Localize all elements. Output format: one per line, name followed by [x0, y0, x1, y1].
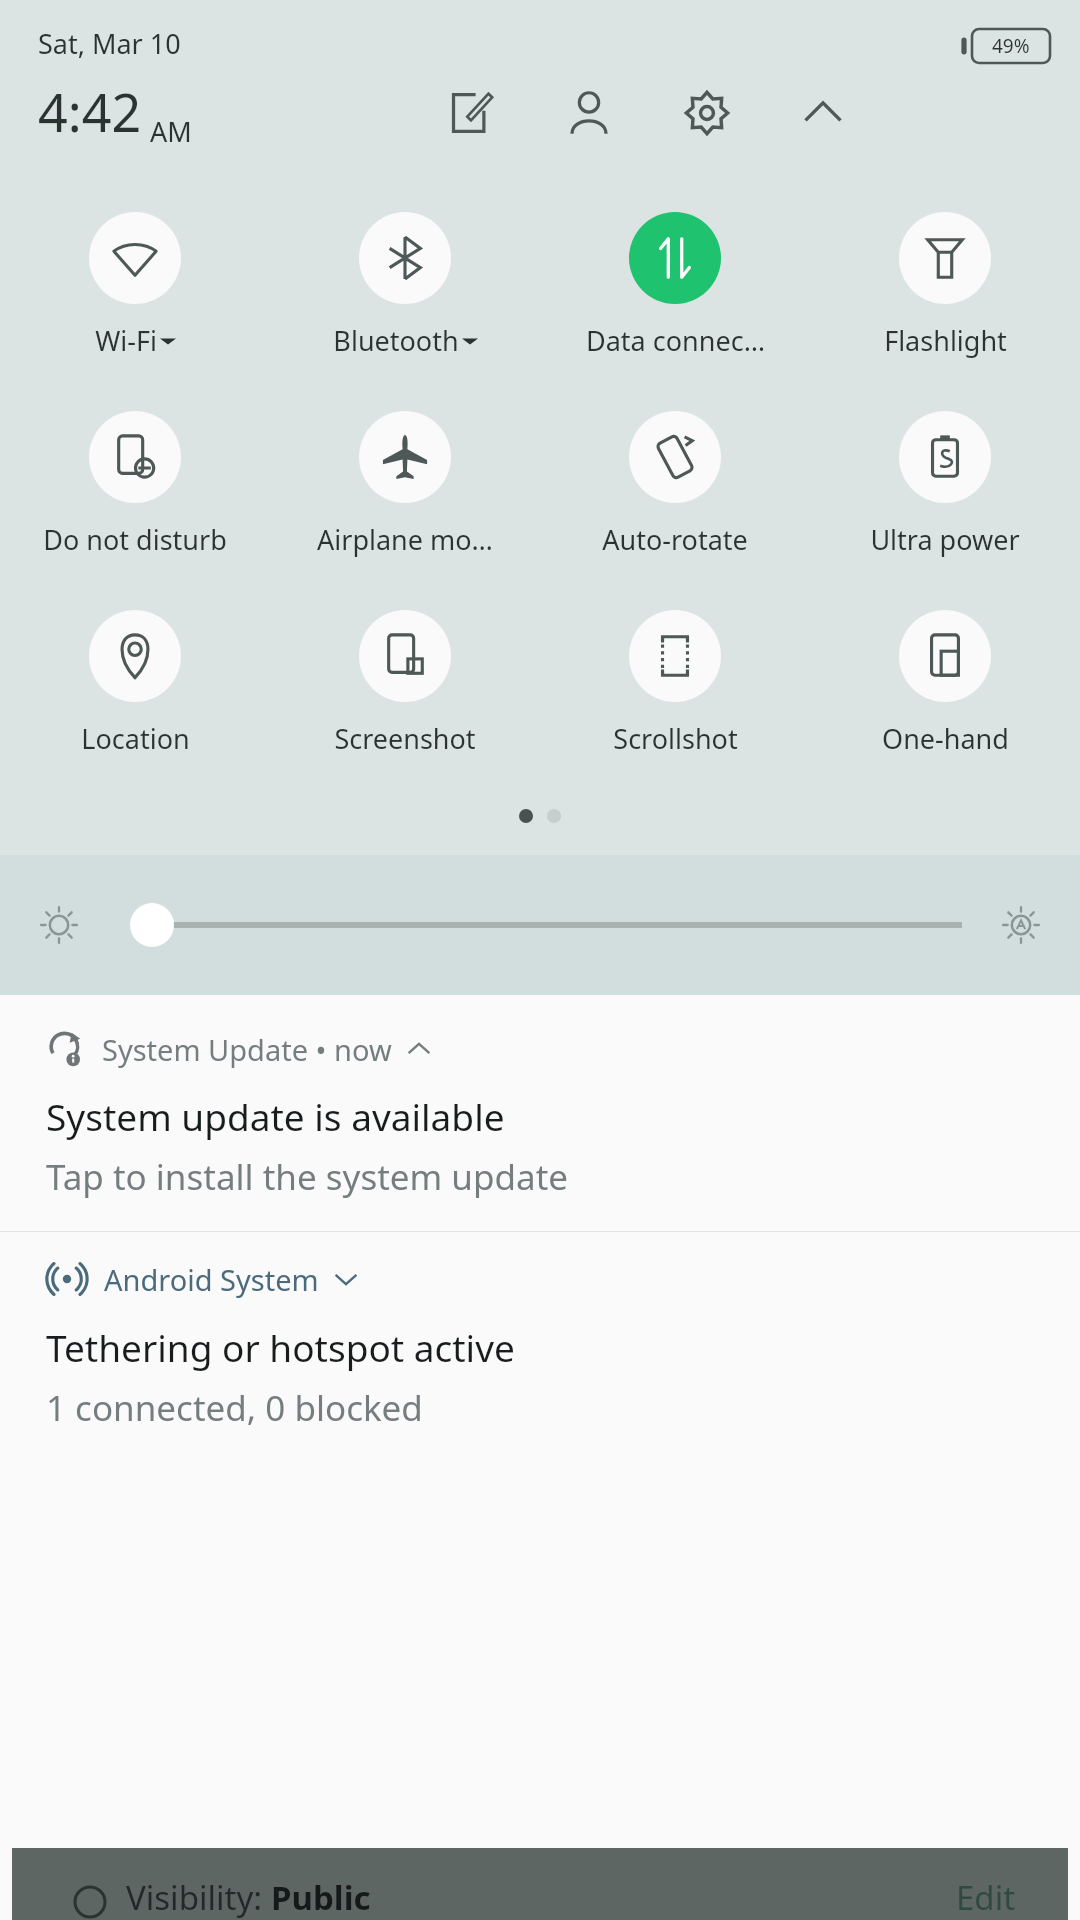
staticText: One-hand — [882, 720, 1009, 757]
staticText: Tap to install the system update — [46, 1153, 569, 1201]
staticText: Airplane mo… — [317, 521, 493, 558]
staticText: Wi-Fi — [95, 322, 157, 359]
staticText: Data connec… — [586, 322, 765, 359]
button[interactable]: One-hand — [810, 610, 1080, 757]
button[interactable]: Wi-Fi — [0, 212, 270, 359]
staticText: Sat, Mar 10 — [38, 25, 181, 62]
staticText: Flashlight — [884, 322, 1007, 359]
staticText: Visibility: — [126, 1875, 271, 1920]
button[interactable]: Edit — [442, 84, 500, 142]
staticText: AM — [150, 113, 192, 150]
staticText: Bluetooth — [333, 322, 459, 359]
staticText: Screenshot — [334, 720, 476, 757]
staticText: System Update • now — [102, 1030, 392, 1069]
button[interactable]: User — [560, 84, 618, 142]
staticText: Do not disturb — [43, 521, 227, 558]
button[interactable]: Do not disturb — [0, 411, 270, 558]
staticText: Public — [271, 1875, 371, 1920]
button[interactable]: Airplane mo… — [270, 411, 540, 558]
button[interactable]: Screenshot — [270, 610, 540, 757]
staticText: 4:42 — [38, 76, 142, 147]
button[interactable]: Auto-rotate — [540, 411, 810, 558]
staticText: 49% — [992, 33, 1030, 59]
staticText: Ultra power — [870, 521, 1020, 558]
button[interactable]: Bluetooth — [270, 212, 540, 359]
button[interactable]: Collapse — [794, 84, 852, 142]
button[interactable]: Android System — [0, 1232, 1080, 1462]
staticText: Location — [81, 720, 190, 757]
button[interactable]: Data connec… — [540, 212, 810, 359]
button[interactable]: Location — [0, 610, 270, 757]
staticText: Edit — [956, 1875, 1016, 1920]
button[interactable] — [130, 897, 950, 953]
button[interactable]: Ultra power — [810, 411, 1080, 558]
staticText: Android System — [104, 1260, 319, 1299]
staticText: System update is available — [46, 1091, 505, 1141]
button[interactable]: Visibility: — [12, 1848, 1068, 1920]
staticText: 1 connected, 0 blocked — [46, 1384, 423, 1432]
button[interactable]: Settings — [678, 84, 736, 142]
button[interactable]: Flashlight — [810, 212, 1080, 359]
staticText: Scrollshot — [613, 720, 738, 757]
staticText: Auto-rotate — [602, 521, 748, 558]
button[interactable]: System Update • now — [0, 995, 1080, 1231]
staticText: Tethering or hotspot active — [46, 1322, 515, 1372]
button[interactable]: Scrollshot — [540, 610, 810, 757]
